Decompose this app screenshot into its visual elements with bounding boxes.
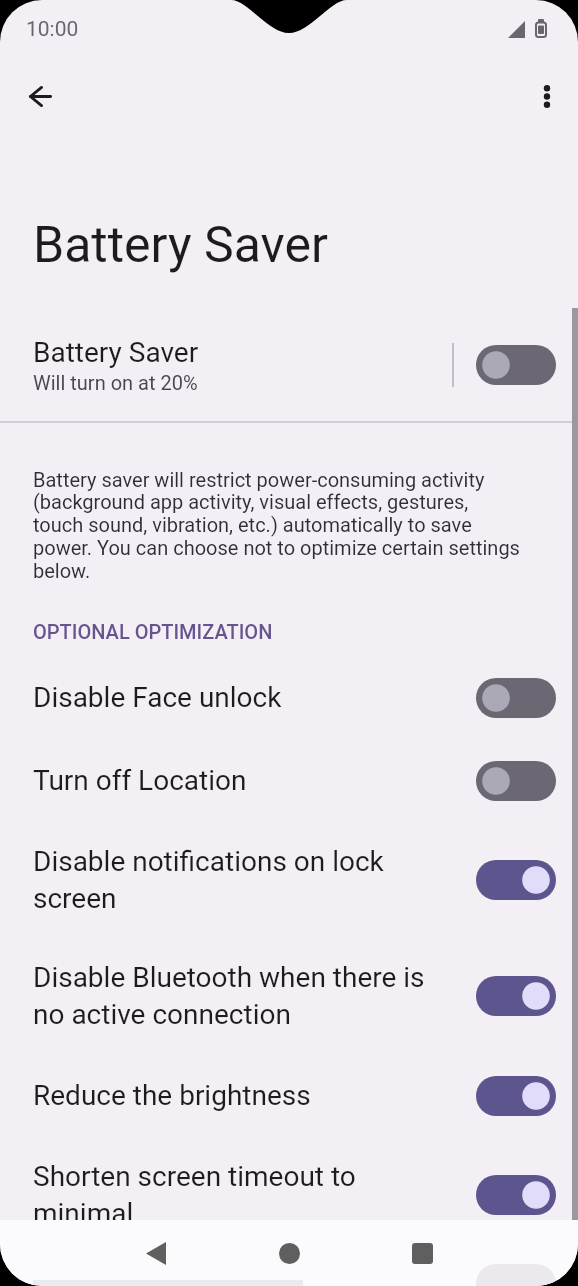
button[interactable]: On: [476, 1175, 556, 1215]
button[interactable]: Turn off Location: [0, 739, 578, 822]
button[interactable]: Off: [476, 761, 556, 801]
staticText: Disable notifications on lock screen: [33, 845, 453, 915]
staticText: Disable Face unlock: [33, 681, 453, 714]
staticText: Battery Saver: [33, 216, 328, 275]
button[interactable]: On: [476, 860, 556, 900]
button[interactable]: Disable Bluetooth when there is no activ…: [0, 938, 578, 1054]
staticText: Reduce the brightness: [33, 1079, 453, 1112]
staticText: Turn off Location: [33, 764, 453, 797]
staticText: Will turn on at 20%: [33, 371, 198, 394]
staticText: Disable Bluetooth when there is no activ…: [33, 961, 453, 1031]
staticText: Battery Saver: [33, 336, 199, 369]
button[interactable]: Recents: [392, 1223, 452, 1283]
button[interactable]: Reduce the brightness: [0, 1054, 578, 1137]
button[interactable]: Disable notifications on lock screen: [0, 822, 578, 938]
button[interactable]: Off: [476, 678, 556, 718]
button[interactable]: Home: [259, 1223, 319, 1283]
button[interactable]: On: [476, 1076, 556, 1116]
button[interactable]: Off: [476, 345, 556, 385]
staticText: 10:00: [26, 17, 79, 42]
button[interactable]: Shorten screen timeout to minimal: [0, 1137, 578, 1253]
staticText: OPTIONAL OPTIMIZATION: [33, 620, 273, 643]
button[interactable]: Battery Saver: [0, 323, 578, 407]
button[interactable]: Back: [126, 1223, 186, 1283]
staticText: Battery saver will restrict power-consum…: [33, 468, 522, 583]
button[interactable]: Disable Face unlock: [0, 656, 578, 739]
button[interactable]: On: [476, 976, 556, 1016]
button[interactable]: Back: [16, 72, 64, 120]
staticText: Shorten screen timeout to minimal: [33, 1160, 453, 1230]
button[interactable]: More options: [523, 72, 571, 120]
